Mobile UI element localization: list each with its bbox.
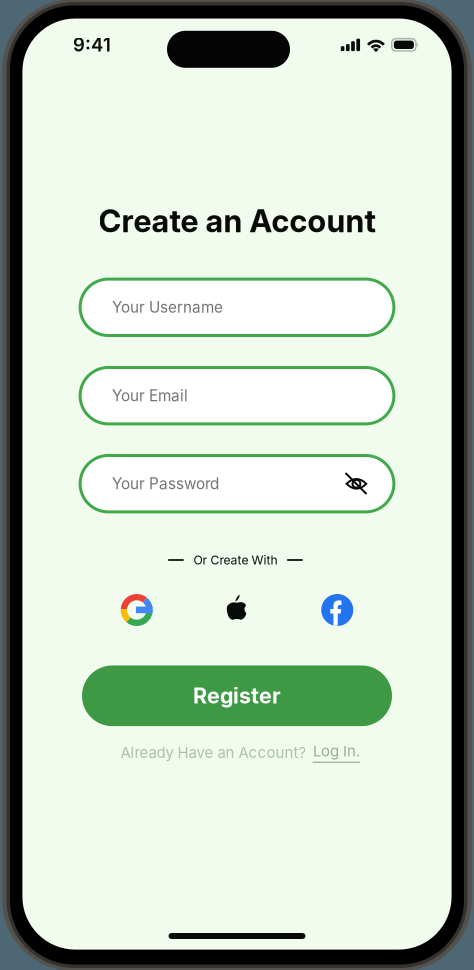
staticText: Already Have an Account? bbox=[120, 743, 306, 762]
button[interactable]: Continue with Google bbox=[121, 594, 153, 626]
staticText: Your Password bbox=[112, 474, 219, 493]
button[interactable]: Continue with Apple bbox=[224, 594, 250, 626]
staticText: Or Create With bbox=[193, 553, 277, 567]
button[interactable]: Log In. bbox=[312, 742, 360, 763]
staticText: Register bbox=[193, 683, 281, 709]
button[interactable]: Your Username bbox=[80, 279, 394, 335]
staticText: Your Username bbox=[112, 298, 223, 316]
staticText: Create an Account bbox=[98, 202, 375, 240]
staticText: Your Email bbox=[112, 386, 188, 405]
staticText: Log In. bbox=[313, 742, 360, 760]
button[interactable]: Your Email bbox=[80, 367, 394, 424]
staticText: 9:41 bbox=[73, 34, 111, 56]
button[interactable]: Register bbox=[82, 665, 392, 726]
button[interactable]: Your Password bbox=[80, 455, 394, 512]
button[interactable]: Continue with Facebook bbox=[321, 594, 353, 626]
